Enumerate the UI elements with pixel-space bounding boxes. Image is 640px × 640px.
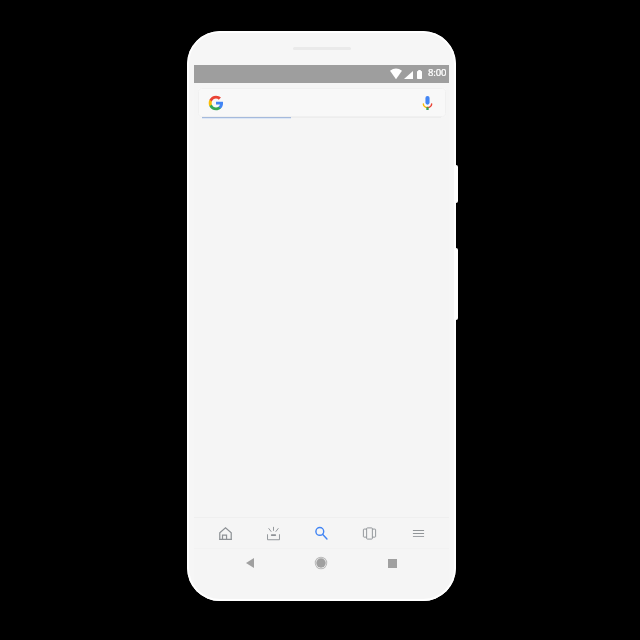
button[interactable]: Google <box>198 88 446 117</box>
button[interactable]: Search <box>304 518 338 548</box>
button[interactable]: Home <box>208 518 242 548</box>
button[interactable]: Updates <box>256 518 290 548</box>
button[interactable]: Collections <box>352 518 386 548</box>
other: Google <box>208 95 224 111</box>
button[interactable]: Home <box>307 549 335 577</box>
other: Voice search <box>423 96 432 110</box>
button[interactable]: More <box>401 518 435 548</box>
button[interactable]: Recents <box>378 549 406 577</box>
staticText: 8:00 <box>428 66 447 79</box>
button[interactable]: Back <box>236 549 264 577</box>
